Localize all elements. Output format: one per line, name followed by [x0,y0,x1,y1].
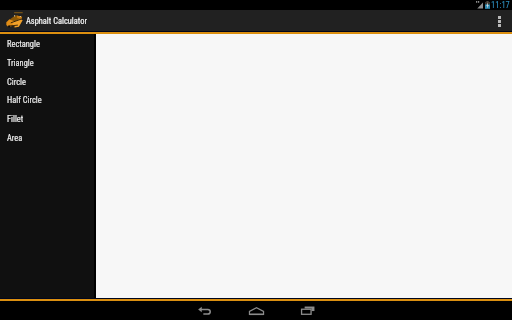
staticText: Fillet [7,114,24,124]
staticText: Half Circle [7,95,42,105]
button[interactable]: Recent apps [282,301,334,320]
button[interactable]: Area [0,128,96,147]
button[interactable]: Fillet [0,109,96,128]
staticText: Circle [7,77,26,87]
staticText: Triangle [7,58,34,68]
button[interactable]: Half Circle [0,90,96,109]
button[interactable]: Circle [0,72,96,91]
staticText: Rectangle [7,39,40,49]
staticText: 11:17 [491,0,510,10]
button[interactable]: More options [487,10,512,31]
button[interactable]: Back [179,301,231,320]
button[interactable]: Rectangle [0,34,96,53]
button[interactable]: Home [230,301,282,320]
button[interactable]: Asphalt Calculator [0,10,90,31]
button[interactable]: Triangle [0,53,96,72]
staticText: Asphalt Calculator [26,16,87,26]
staticText: Area [7,133,23,143]
